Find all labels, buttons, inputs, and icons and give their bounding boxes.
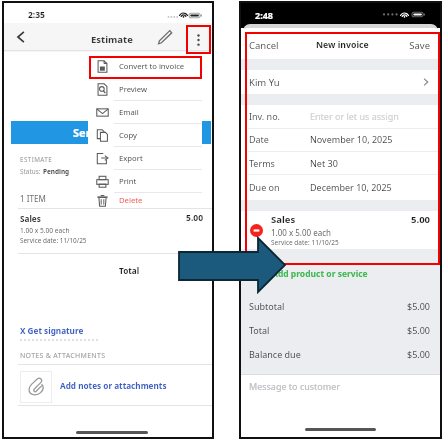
button[interactable]: Email	[88, 101, 202, 123]
staticText: Preview	[119, 84, 147, 94]
button[interactable]: Convert to invoice	[88, 55, 202, 77]
staticText: Sales	[271, 213, 296, 226]
staticText: 1.00 x 5.00 each	[271, 227, 331, 238]
staticText: Message to customer	[249, 380, 340, 392]
staticText: Convert to invoice	[119, 61, 185, 71]
staticText: NOTES & ATTACHMENTS	[20, 351, 106, 361]
staticText: Cancel	[249, 39, 279, 52]
staticText: Status:	[20, 167, 43, 176]
staticText: Net 30	[310, 157, 338, 169]
button[interactable]: More options	[186, 25, 211, 54]
button[interactable]: Due on	[240, 176, 441, 198]
button[interactable]: Cancel	[249, 36, 279, 54]
staticText: December 10, 2025	[310, 181, 392, 193]
staticText: Service date: 11/10/25	[271, 238, 339, 247]
button[interactable]: Kim Yu	[240, 70, 441, 94]
button[interactable]: Copy	[88, 124, 202, 146]
staticText: Terms	[249, 157, 275, 169]
staticText: Export	[119, 153, 143, 163]
button[interactable]: Print	[88, 170, 202, 192]
staticText: Total	[249, 324, 270, 336]
staticText: Inv. no.	[249, 110, 280, 122]
button[interactable]: Inv. no.	[240, 105, 441, 127]
button[interactable]: Edit	[157, 29, 173, 45]
staticText: Kim Yu	[249, 76, 280, 89]
staticText: 1 ITEM	[20, 193, 46, 204]
staticText: Add notes or attachments	[60, 380, 167, 391]
staticText: X Get signature	[20, 325, 84, 336]
button[interactable]: Add product or service	[240, 262, 441, 286]
button[interactable]: Send	[11, 121, 211, 144]
staticText: Copy	[119, 130, 138, 140]
staticText: 2:48	[255, 9, 273, 21]
button[interactable]: Back	[12, 28, 30, 46]
staticText: Enter or let us assign	[310, 110, 399, 122]
staticText: Save	[409, 39, 430, 52]
staticText: Pending	[43, 167, 70, 176]
button[interactable]: Add notes or attachments	[2, 365, 214, 405]
staticText: Subtotal	[249, 300, 285, 312]
staticText: 5.00	[411, 213, 430, 226]
staticText: Add product or service	[272, 268, 368, 280]
staticText: Total	[119, 265, 140, 276]
staticText: Estimate	[91, 33, 133, 46]
staticText: Email	[119, 107, 139, 117]
staticText: 1.00 x 5.00 each	[20, 226, 70, 235]
staticText: Print	[119, 176, 137, 186]
staticText: Service date: 11/10/25	[20, 236, 87, 245]
staticText: $5.00	[406, 300, 430, 312]
staticText: $5.00	[406, 324, 430, 336]
staticText: Due on	[249, 181, 280, 193]
button[interactable]: Delete	[88, 193, 202, 207]
staticText: Delete	[119, 195, 143, 205]
staticText: Send	[73, 125, 100, 140]
staticText: Date	[249, 133, 269, 145]
button[interactable]: Export	[88, 147, 202, 169]
staticText: 2:35	[28, 9, 45, 21]
staticText: November 10, 2025	[310, 133, 393, 145]
staticText: New invoice	[316, 39, 369, 51]
button[interactable]: Preview	[88, 78, 202, 100]
button[interactable]: Terms	[240, 152, 441, 174]
staticText: Balance due	[249, 348, 301, 360]
button[interactable]: Date	[240, 128, 441, 150]
staticText: ESTIMATE	[20, 155, 53, 164]
staticText: Sales	[20, 213, 41, 224]
staticText: 5.00	[186, 212, 203, 224]
staticText: $5.00	[406, 348, 430, 360]
